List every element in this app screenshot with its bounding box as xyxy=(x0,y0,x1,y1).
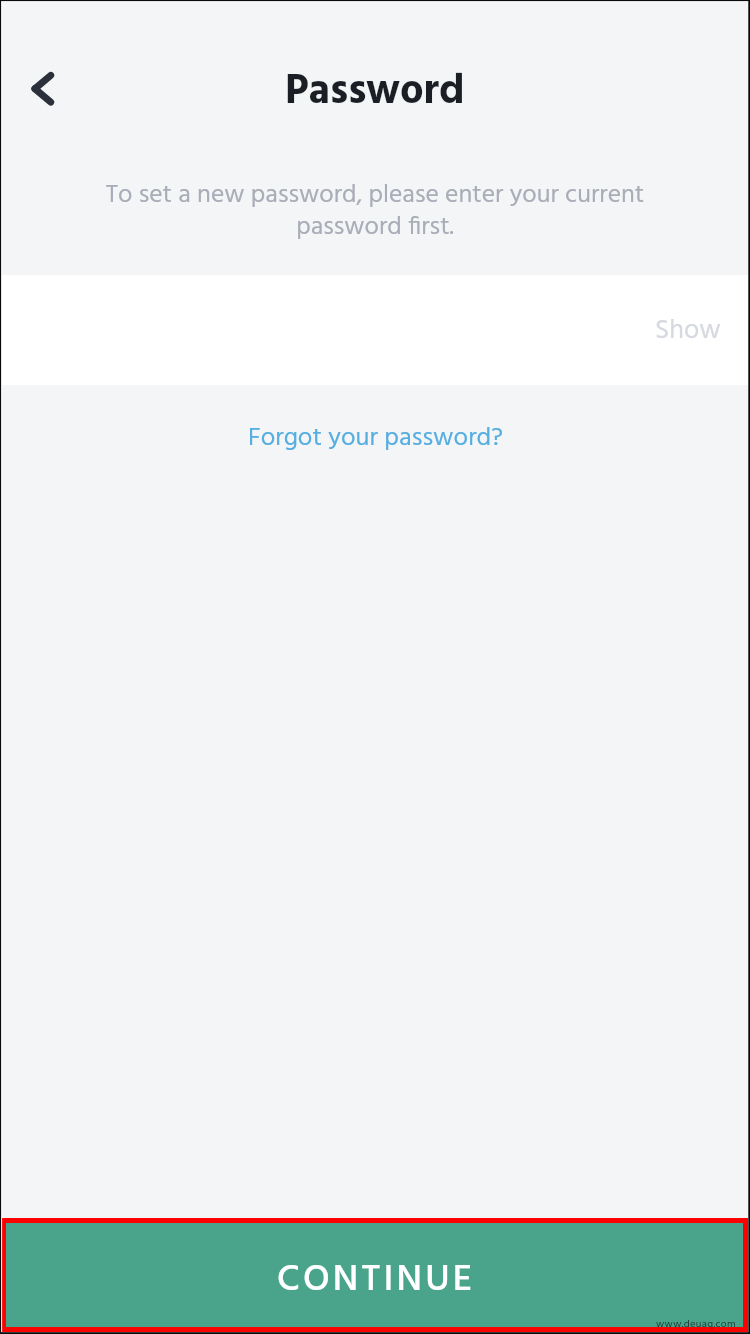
button[interactable]: Show xyxy=(655,309,721,353)
button[interactable]: CONTINUE xyxy=(6,1223,743,1327)
staticText: To set a new password, please enter your… xyxy=(95,175,655,248)
staticText: Password xyxy=(285,59,465,126)
staticText: CONTINUE xyxy=(277,1250,476,1310)
button[interactable]: Show xyxy=(0,275,750,385)
staticText: www.deuaq.com xyxy=(656,1316,736,1333)
staticText: Show xyxy=(655,309,721,353)
button[interactable]: Back xyxy=(12,58,76,122)
button[interactable]: Forgot your password? xyxy=(248,418,503,459)
staticText: Forgot your password? xyxy=(248,418,503,459)
